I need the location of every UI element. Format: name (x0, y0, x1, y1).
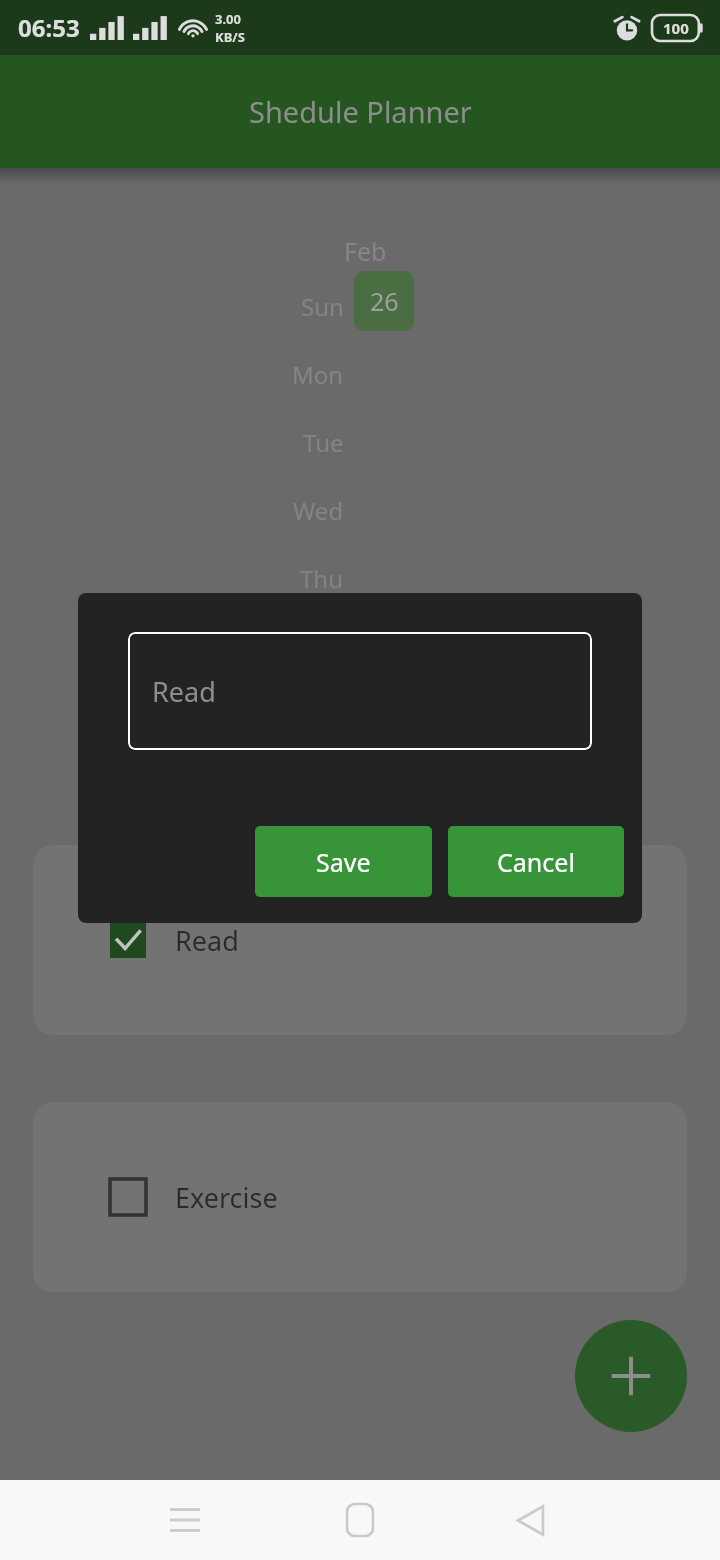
staticText: Read (175, 922, 239, 959)
button[interactable]: Add task (575, 1320, 687, 1432)
staticText: Wed (293, 494, 344, 527)
staticText: 06:53 (18, 11, 80, 44)
button[interactable]: Home (302, 1480, 418, 1560)
staticText: Feb (344, 234, 387, 268)
button[interactable]: Tue (282, 422, 344, 462)
button[interactable]: Wed (282, 490, 344, 530)
staticText: Exercise (175, 1179, 278, 1216)
staticText: Read (152, 673, 216, 710)
button[interactable]: Thu (282, 558, 344, 598)
button[interactable]: Exercise (33, 1102, 687, 1292)
button[interactable]: 26 (354, 271, 414, 331)
button[interactable]: Save (255, 826, 432, 897)
staticText: 26 (370, 284, 399, 318)
button[interactable]: Sun (282, 286, 344, 326)
button[interactable]: Mon (282, 354, 344, 394)
staticText: KB/S (215, 28, 245, 46)
button[interactable]: Read (33, 845, 687, 1035)
staticText: Sun (301, 290, 344, 323)
button[interactable]: Read (128, 632, 592, 750)
staticText: Tue (303, 426, 344, 459)
staticText: Cancel (497, 845, 575, 879)
staticText: Save (316, 845, 371, 879)
staticText: 3.00 (215, 10, 241, 28)
staticText: Mon (292, 358, 344, 391)
button[interactable]: Cancel (448, 826, 624, 897)
staticText: Thu (300, 562, 344, 595)
staticText: Shedule Planner (249, 92, 472, 131)
staticText: 100 (663, 18, 689, 38)
button[interactable]: Back (472, 1480, 588, 1560)
button[interactable]: Recent apps (127, 1480, 243, 1560)
